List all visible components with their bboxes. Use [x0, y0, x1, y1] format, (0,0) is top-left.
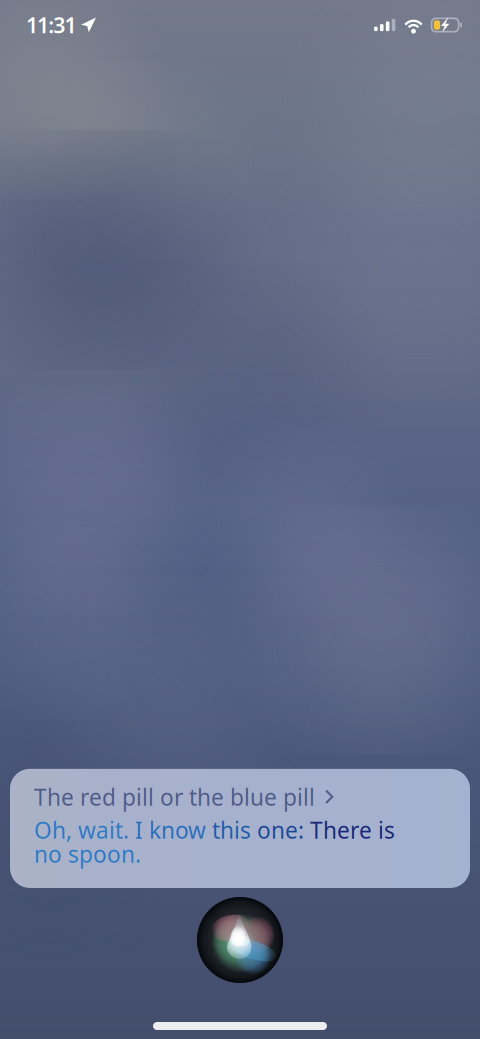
staticText: The red pill or the blue pill [34, 782, 315, 812]
button[interactable]: The red pill or the blue pill [10, 769, 470, 888]
staticText: Oh, wait. I know this one: There is no s… [34, 818, 395, 866]
staticText: 11:31 [26, 11, 76, 39]
